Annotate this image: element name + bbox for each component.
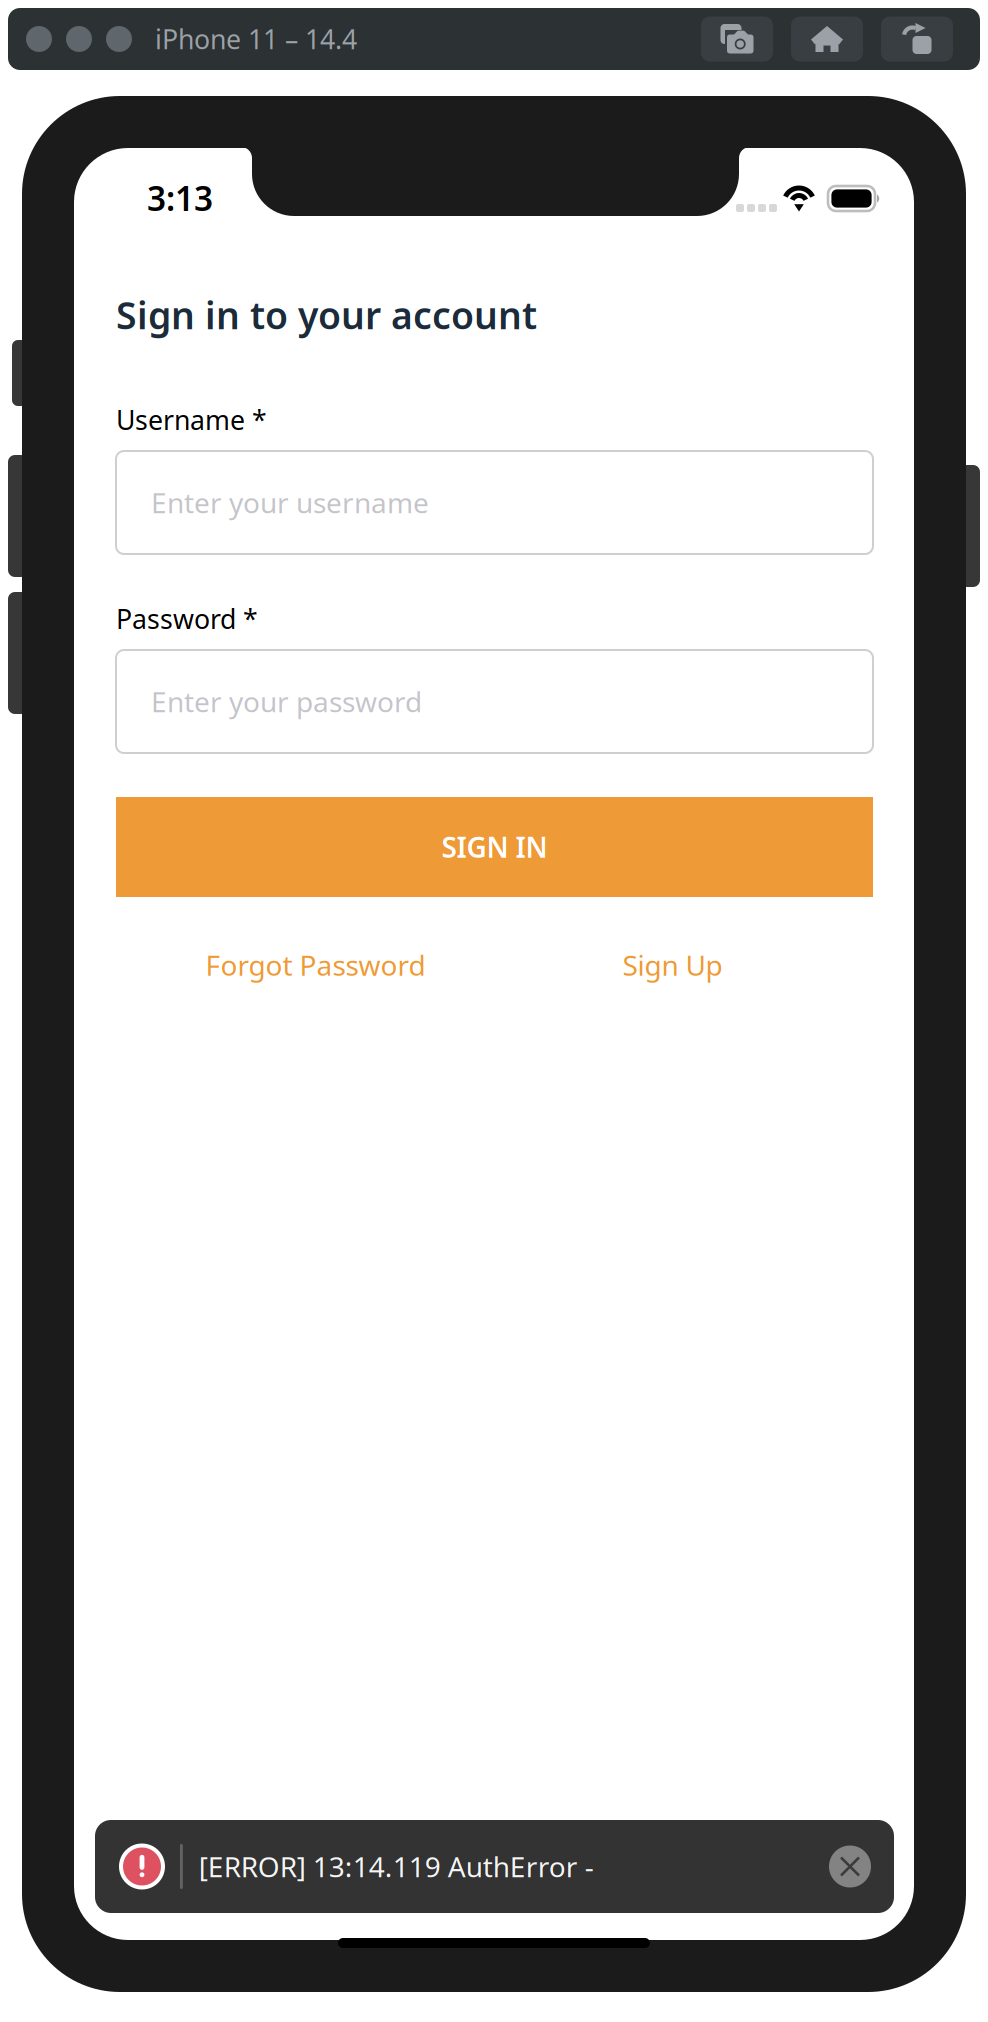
- staticText: Forgot Password: [205, 946, 425, 984]
- button[interactable]: Enter your username: [116, 451, 873, 554]
- button[interactable]: SIGN IN: [116, 797, 873, 897]
- staticText: Enter your password: [151, 683, 422, 720]
- staticText: iPhone 11 – 14.4: [155, 21, 357, 57]
- button[interactable]: Enter your password: [116, 650, 873, 753]
- staticText: Sign in to your account: [116, 290, 537, 340]
- staticText: Password *: [116, 601, 258, 636]
- button[interactable]: Sign Up: [515, 936, 830, 994]
- button[interactable]: Screenshot: [701, 16, 773, 61]
- button[interactable]: Forgot Password: [116, 936, 515, 994]
- button[interactable]: Dismiss error: [829, 1845, 871, 1887]
- staticText: [ERROR] 13:14.119 AuthError -: [199, 1848, 594, 1885]
- button[interactable]: Rotate: [881, 16, 953, 61]
- staticText: SIGN IN: [441, 828, 547, 866]
- staticText: Username *: [116, 402, 267, 437]
- staticText: 3:13: [147, 176, 213, 220]
- button[interactable]: Home: [791, 16, 863, 61]
- staticText: Sign Up: [622, 946, 722, 984]
- staticText: Enter your username: [151, 484, 429, 521]
